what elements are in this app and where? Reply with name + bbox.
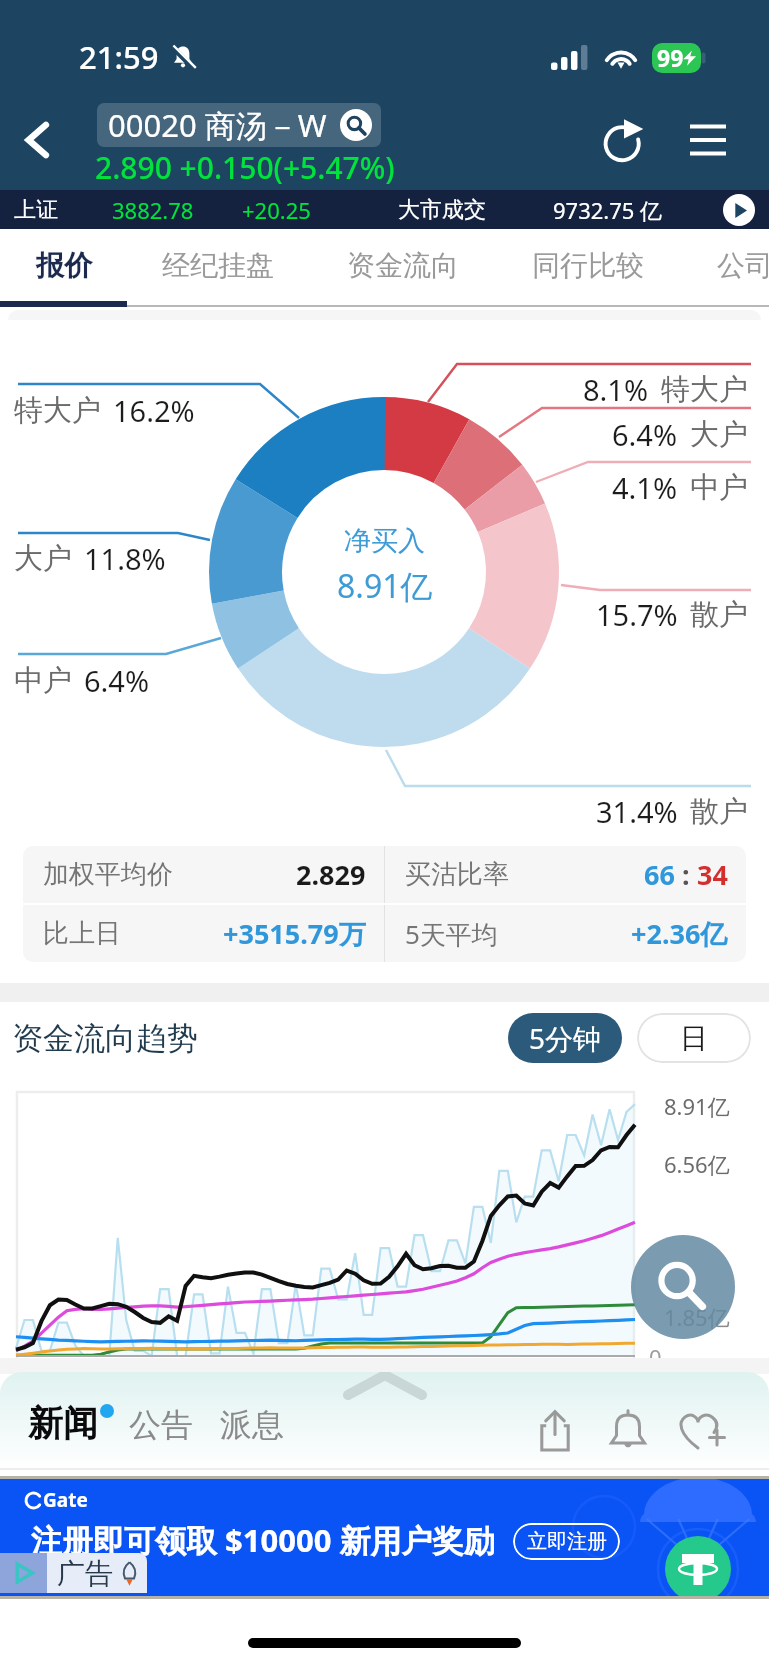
staticText: 4.1% [612,468,678,507]
button[interactable]: 资金流向 [342,229,464,301]
staticText: 8.91亿 [664,1091,730,1121]
staticText: 99 [657,42,684,73]
staticText: +20.25 [242,195,311,225]
button[interactable]: 公司 [714,229,769,301]
staticText: 00020 商汤－W [108,104,327,146]
button[interactable]: Alerts [591,1394,664,1467]
staticText: 注册即可领取 $10000 新用户奖励 [31,1519,495,1561]
button[interactable]: 00020 商汤－W [108,104,372,146]
button[interactable]: 报价 [33,229,95,301]
staticText: 31.4% [596,792,678,831]
staticText: 5968万 [664,1368,743,1401]
staticText: 5天平均 [405,916,498,952]
staticText: 比上日 [43,917,121,950]
staticText: 买沽比率 [405,858,509,891]
staticText: Gate [43,1487,88,1513]
staticText: 净买入 [344,524,425,558]
staticText: 21:59 [79,36,159,78]
staticText: 9732.75 亿 [553,195,663,225]
staticText: 16.2% [113,391,195,430]
staticText: 特大户 [14,392,101,429]
button[interactable]: 公告 [129,1405,193,1445]
staticText: 6.4% [84,661,150,700]
staticText: 2.890 +0.150(+5.47%) [95,147,395,188]
button[interactable]: 经纪挂盘 [157,229,279,301]
button[interactable]: 派息 [220,1405,284,1445]
staticText: +2.36亿 [631,915,728,952]
staticText: 特大户 [661,371,748,408]
staticText: 中户 [690,469,748,506]
staticText: 1.85亿 [664,1302,730,1332]
button[interactable]: Add to watchlist [664,1394,737,1467]
button[interactable]: Refresh [587,103,661,177]
staticText: 6.4% [612,415,678,454]
staticText: 2.829 [296,856,366,893]
staticText: 广告 [57,1556,113,1591]
button[interactable]: 立即注册 [513,1523,620,1560]
staticText: 加权平均价 [43,858,173,891]
staticText: 散户 [690,793,748,830]
button[interactable]: Back [0,102,76,178]
staticText: 3882.78 [112,195,194,225]
staticText: 资金流向 [347,248,459,283]
staticText: 0 [649,1342,662,1372]
staticText: 同行比较 [532,248,644,283]
button[interactable]: Search [631,1235,735,1339]
staticText: 上证 [14,196,58,224]
staticText: 6.56亿 [664,1149,730,1179]
button[interactable]: 同行比较 [527,229,649,301]
staticText: 报价 [36,248,92,283]
staticText: : [675,856,697,893]
staticText: 公司 [717,248,769,283]
staticText: +3515.79万 [223,915,366,952]
staticText: 大市成交 [398,196,486,224]
staticText: 中户 [14,662,72,699]
button[interactable]: 新闻 [28,1401,112,1445]
staticText: 5分钟 [529,1019,602,1057]
staticText: 立即注册 [527,1529,607,1554]
button[interactable]: Menu [671,103,745,177]
button[interactable]: Gate [0,1479,769,1596]
staticText: 公告 [129,1405,193,1445]
staticText: 11.8% [84,539,166,578]
staticText: 新闻 [28,1401,98,1445]
button[interactable]: 日 [637,1013,751,1063]
button[interactable]: Share [518,1394,591,1467]
staticText: 15.7% [596,595,678,634]
staticText: 66 [644,856,675,893]
staticText: 散户 [690,596,748,633]
button[interactable]: 5分钟 [508,1013,622,1063]
button[interactable]: Play [723,194,755,226]
staticText: 大户 [690,416,748,453]
staticText: 34 [697,856,728,893]
staticText: 经纪挂盘 [162,248,274,283]
staticText: 大户 [14,540,72,577]
staticText: 8.1% [583,370,649,409]
staticText: 派息 [220,1405,284,1445]
staticText: 8.91亿 [337,564,433,608]
staticText: 日 [680,1021,708,1056]
staticText: 资金流向趋势 [12,1019,198,1058]
